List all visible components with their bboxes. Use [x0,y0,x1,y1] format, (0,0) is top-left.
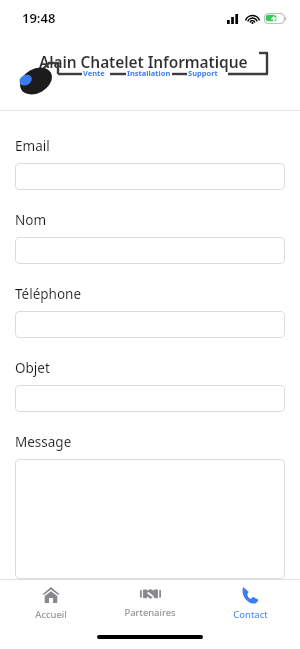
other: Partenaires [140,586,161,602]
staticText: Téléphone [15,285,82,303]
button[interactable] [15,385,285,412]
staticText: Nom [15,211,47,229]
button[interactable]: Accueil [2,580,100,628]
staticText: Alain Chatelet Informatique [39,51,248,72]
button[interactable] [15,163,285,190]
button[interactable] [15,459,285,579]
staticText: Installation [127,68,171,78]
button[interactable] [15,237,285,264]
staticText: Accueil [35,608,67,621]
other: Accueil [42,586,60,604]
staticText: Contact [233,608,268,621]
staticText: Email [15,137,50,155]
button[interactable]: Partenaires [101,580,199,628]
staticText: Partenaires [124,606,176,619]
other: Contact [241,586,259,604]
staticText: Vente [83,68,105,78]
staticText: Objet [15,359,50,377]
button[interactable] [15,311,285,338]
button[interactable]: Contact [201,580,299,628]
staticText: Support [188,68,218,78]
staticText: 19:48 [22,9,56,27]
staticText: Message [15,433,72,451]
